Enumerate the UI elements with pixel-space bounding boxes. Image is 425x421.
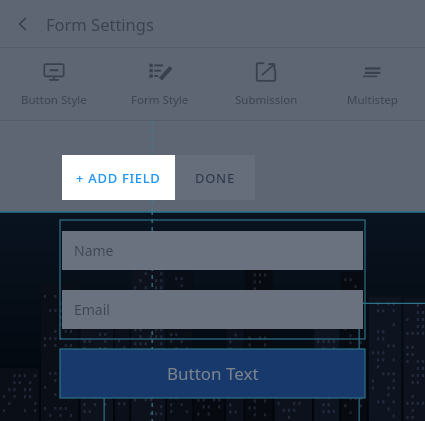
button[interactable]: Submission [213, 48, 319, 120]
staticText: Name [74, 241, 114, 260]
staticText: Submission [235, 92, 298, 108]
staticText: DONE [195, 169, 235, 187]
staticText: Form Style [131, 92, 189, 108]
staticText: Button Style [21, 92, 87, 108]
button[interactable]: DONE [175, 155, 255, 200]
staticText: + ADD FIELD [76, 169, 161, 187]
staticText: Multistep [347, 92, 398, 108]
button[interactable]: Form Style [107, 48, 213, 120]
button[interactable]: Email [62, 290, 363, 329]
button[interactable]: Multistep [319, 48, 425, 120]
staticText: Button Text [167, 362, 259, 385]
button[interactable]: Back [0, 1, 46, 47]
staticText: Form Settings [46, 13, 154, 35]
staticText: Email [74, 300, 110, 319]
button[interactable]: + ADD FIELD [62, 155, 175, 200]
button[interactable]: Name [62, 231, 363, 270]
button[interactable]: Button Text [60, 349, 365, 398]
button[interactable]: Button Style [0, 48, 107, 120]
